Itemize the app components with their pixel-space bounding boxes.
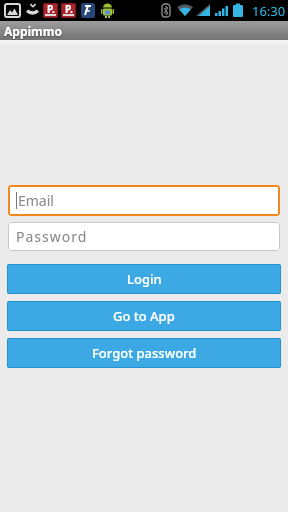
button[interactable]: Login	[7, 264, 281, 294]
staticText: Login	[127, 270, 162, 288]
button[interactable]: Forgot password	[7, 338, 281, 368]
button[interactable]: Password	[8, 222, 280, 251]
staticText: Appimmo	[4, 23, 62, 39]
staticText: Password	[16, 227, 88, 246]
staticText: P.	[65, 3, 73, 16]
staticText: 16:30	[252, 2, 286, 20]
staticText: Forgot password	[92, 344, 197, 362]
staticText: Go to App	[113, 307, 175, 325]
staticText: P.	[47, 3, 55, 16]
staticText: Email	[18, 191, 54, 210]
button[interactable]: Go to App	[7, 301, 281, 331]
button[interactable]: Email	[8, 185, 280, 216]
